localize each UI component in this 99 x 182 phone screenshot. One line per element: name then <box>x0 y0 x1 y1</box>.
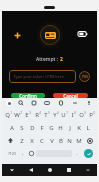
staticText: 1 <box>10 111 12 115</box>
button[interactable]: Stickers <box>30 99 38 107</box>
button[interactable]: , <box>19 147 27 160</box>
staticText: N <box>67 137 72 145</box>
button[interactable]: Add <box>13 31 22 40</box>
button[interactable]: Z <box>17 134 27 147</box>
staticText: 6 <box>57 111 59 115</box>
button[interactable]: S <box>17 121 27 134</box>
staticText: A <box>10 124 14 132</box>
staticText: PIN <box>82 75 88 79</box>
button[interactable]: Recents <box>59 164 78 176</box>
button[interactable]: B <box>56 134 65 147</box>
staticText: P <box>89 111 93 119</box>
staticText: R <box>35 111 39 119</box>
button[interactable]: Info <box>79 71 90 82</box>
button[interactable]: Gboard menu <box>6 100 12 106</box>
staticText: H <box>58 124 63 132</box>
staticText: D <box>30 124 35 132</box>
button[interactable]: K <box>74 121 83 134</box>
staticText: G <box>49 124 54 132</box>
button[interactable]: Scan card <box>36 21 64 49</box>
staticText: F <box>40 124 44 132</box>
button[interactable]: X <box>27 134 37 147</box>
staticText: O <box>79 111 84 119</box>
button[interactable]: O <box>78 108 87 121</box>
staticText: K <box>77 124 81 132</box>
staticText: . <box>76 150 78 157</box>
staticText: X <box>30 137 34 145</box>
staticText: 4 <box>39 111 41 115</box>
staticText: 2 <box>20 111 22 115</box>
staticText: 8 <box>74 111 76 115</box>
button[interactable]: Confirm <box>11 93 45 98</box>
button[interactable]: H <box>56 121 65 134</box>
staticText: I <box>71 111 74 119</box>
staticText: E <box>25 111 29 119</box>
staticText: , <box>22 150 24 157</box>
button[interactable]: V <box>47 134 56 147</box>
button[interactable]: Settings <box>71 99 79 107</box>
button[interactable]: L <box>83 121 92 134</box>
staticText: Q <box>5 111 10 119</box>
button[interactable]: C <box>37 134 47 147</box>
staticText: 7 <box>66 111 68 115</box>
button[interactable]: Home <box>40 164 59 176</box>
button[interactable]: I <box>69 108 78 121</box>
staticText: T <box>44 111 48 119</box>
button[interactable]: Enter <box>84 149 93 158</box>
staticText: U <box>61 111 66 119</box>
button[interactable]: Back <box>21 164 40 176</box>
button[interactable]: G <box>47 121 56 134</box>
button[interactable]: Battery <box>78 31 88 37</box>
button[interactable]: Shift <box>3 134 17 147</box>
button[interactable]: W <box>13 108 23 121</box>
button[interactable]: . <box>73 147 81 160</box>
staticText: J <box>69 124 71 132</box>
button[interactable]: Backspace <box>83 134 96 147</box>
button[interactable]: Q <box>3 108 13 121</box>
staticText: Z <box>20 137 24 145</box>
staticText: L <box>86 124 90 132</box>
staticText: Attempt : <box>36 56 58 63</box>
staticText: B <box>59 137 63 145</box>
button[interactable]: Cancel <box>53 93 88 98</box>
staticText: Type your token / PIN here <box>13 74 64 79</box>
button[interactable]: F <box>37 121 47 134</box>
button[interactable]: R <box>33 108 42 121</box>
button[interactable]: Y <box>51 108 60 121</box>
button[interactable]: E <box>23 108 33 121</box>
button[interactable]: P <box>87 108 96 121</box>
staticText: 2 <box>60 56 63 63</box>
staticText: 9 <box>84 111 86 115</box>
button[interactable]: Voice input <box>85 99 93 107</box>
staticText: ?123 <box>8 151 16 156</box>
button[interactable]: D <box>27 121 37 134</box>
button[interactable]: ?123 <box>4 147 19 160</box>
button[interactable]: Hide keyboard <box>2 164 21 176</box>
staticText: Y <box>53 111 57 119</box>
staticText: W <box>14 111 20 119</box>
staticText: S <box>20 124 24 132</box>
button[interactable]: J <box>65 121 74 134</box>
button[interactable]: Emoji <box>27 147 35 160</box>
button[interactable]: A <box>7 121 17 134</box>
staticText: 0 <box>93 111 95 115</box>
staticText: Confirm <box>19 93 37 98</box>
button[interactable]: GIF <box>43 99 51 107</box>
button[interactable]: M <box>74 134 83 147</box>
staticText: 5 <box>48 111 50 115</box>
button[interactable]: N <box>65 134 74 147</box>
staticText: C <box>40 137 44 145</box>
staticText: 3 <box>29 111 31 115</box>
staticText: V <box>50 137 54 145</box>
button[interactable]: More <box>78 164 97 176</box>
button[interactable]: Type your token / PIN here <box>9 70 76 83</box>
staticText: M <box>76 137 82 145</box>
button[interactable]: Clipboard <box>57 99 65 107</box>
button[interactable]: T <box>42 108 51 121</box>
staticText: Cancel <box>63 93 78 98</box>
button[interactable]: Search <box>17 99 25 107</box>
button[interactable]: U <box>60 108 69 121</box>
